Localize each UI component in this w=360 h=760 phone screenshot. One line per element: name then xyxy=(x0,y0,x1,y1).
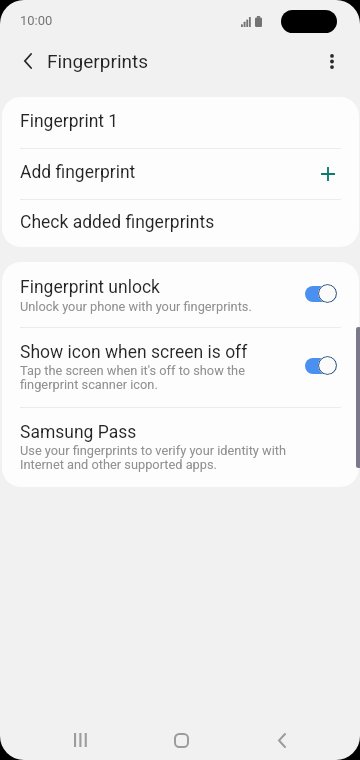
button[interactable] xyxy=(2,199,359,247)
staticText: Fingerprint unlock xyxy=(20,277,160,298)
button[interactable]: More options xyxy=(308,37,356,85)
staticText: Samsung Pass xyxy=(20,422,137,443)
button[interactable] xyxy=(2,262,359,327)
staticText: Use your fingerprints to verify your ide… xyxy=(20,443,287,472)
button[interactable]: Recent apps xyxy=(40,714,120,760)
staticText: Show icon when screen is off xyxy=(20,342,248,363)
button[interactable] xyxy=(2,407,359,487)
staticText: Fingerprint 1 xyxy=(20,111,119,132)
staticText: 10:00 xyxy=(20,13,53,28)
staticText: Fingerprints xyxy=(47,50,149,72)
button[interactable] xyxy=(2,327,359,407)
button[interactable]: Home xyxy=(141,714,221,760)
staticText: Check added fingerprints xyxy=(20,212,215,233)
staticText: Add fingerprint xyxy=(20,162,136,183)
button[interactable]: Back xyxy=(242,714,322,760)
button[interactable] xyxy=(2,148,359,199)
staticText: Unlock your phone with your fingerprints… xyxy=(20,299,252,314)
staticText: Tap the screen when it's off to show the… xyxy=(20,363,245,392)
button[interactable] xyxy=(2,97,359,148)
button[interactable]: Navigate up xyxy=(4,37,52,85)
